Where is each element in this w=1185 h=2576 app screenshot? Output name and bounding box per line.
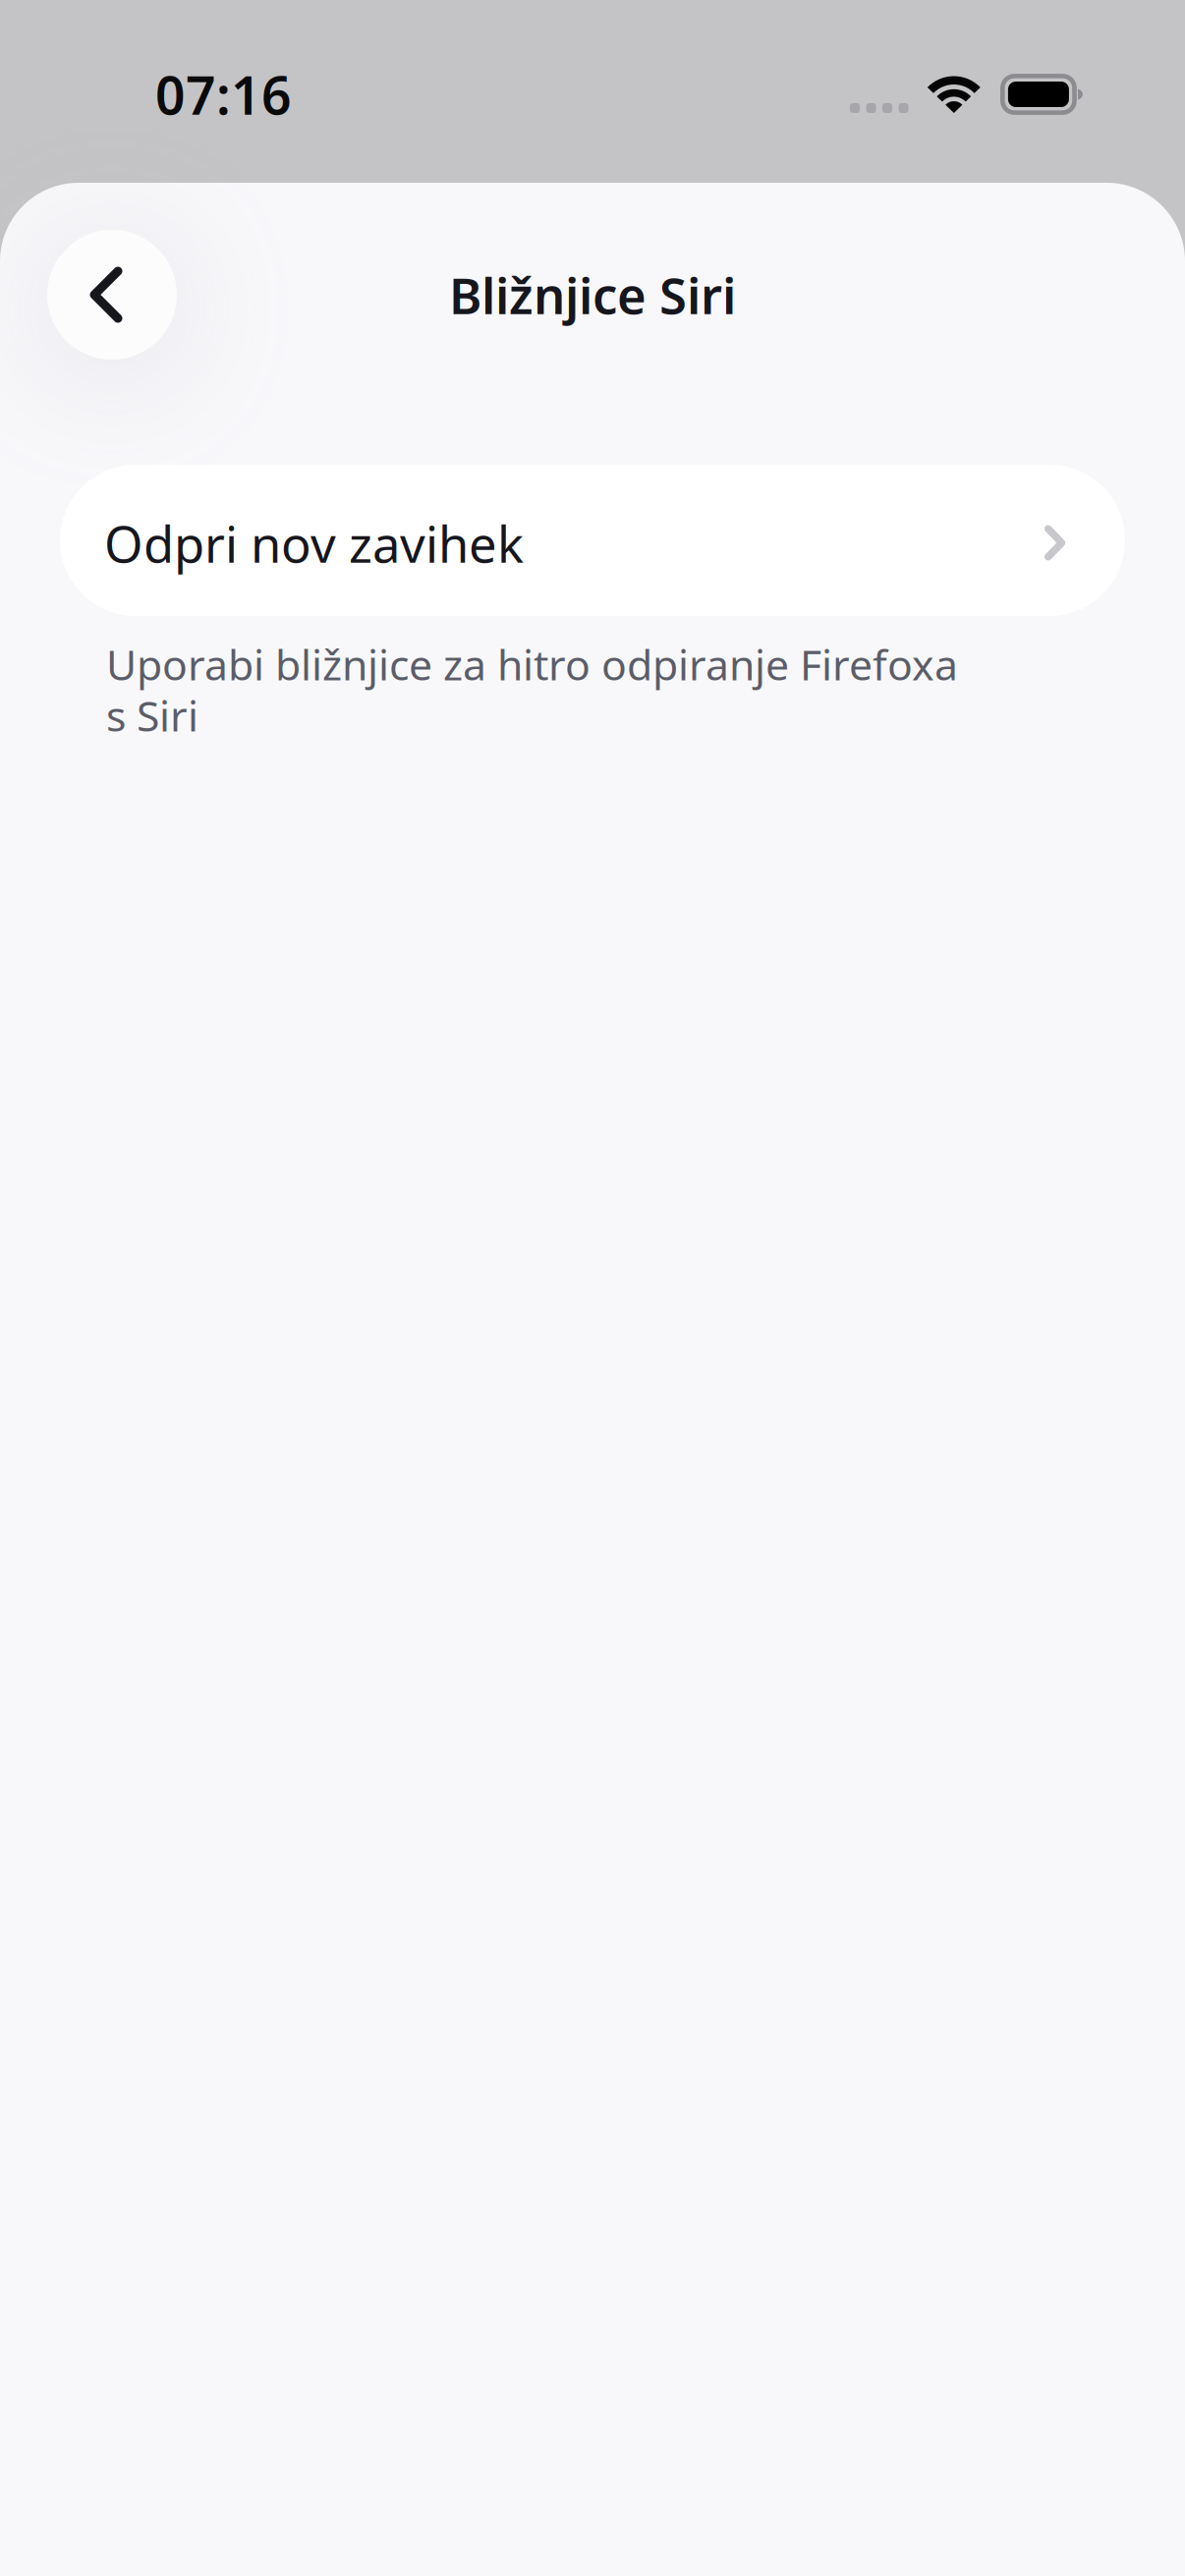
button[interactable]: Back	[47, 230, 177, 360]
staticText: s Siri	[106, 687, 198, 743]
staticText: Bližnjice Siri	[449, 262, 736, 328]
staticText: 07:16	[155, 60, 292, 129]
staticText: Uporabi bližnjice za hitro odpiranje Fir…	[106, 636, 958, 692]
staticText: Odpri nov zavihek	[104, 510, 524, 576]
button[interactable]: Odpri nov zavihek	[60, 465, 1125, 616]
